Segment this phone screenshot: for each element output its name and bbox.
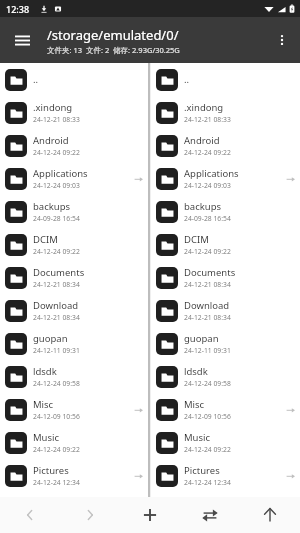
button[interactable]: DCIM bbox=[0, 228, 148, 261]
staticText: 文件夹: 13 文件: 2 储存: 2.93G/30.25G bbox=[47, 45, 180, 55]
button[interactable]: backups bbox=[151, 195, 300, 228]
staticText: 24-12-21 08:34 bbox=[33, 313, 80, 322]
button[interactable]: .xindong bbox=[0, 96, 148, 129]
staticText: DCIM bbox=[184, 233, 209, 246]
staticText: backups bbox=[33, 200, 71, 213]
staticText: 24-09-28 16:54 bbox=[184, 214, 231, 223]
staticText: 24-12-24 09:58 bbox=[184, 379, 231, 388]
button[interactable]: Misc bbox=[0, 393, 148, 426]
button[interactable]: Music bbox=[151, 426, 300, 459]
staticText: 24-12-21 08:34 bbox=[184, 313, 231, 322]
staticText: Android bbox=[33, 134, 69, 147]
staticText: guopan bbox=[184, 332, 219, 345]
button[interactable]: .. bbox=[0, 63, 148, 96]
staticText: DCIM bbox=[33, 233, 58, 246]
staticText: Music bbox=[33, 431, 60, 444]
staticText: Pictures bbox=[33, 464, 69, 477]
staticText: Applications bbox=[33, 167, 88, 180]
staticText: 24-12-09 10:56 bbox=[33, 412, 80, 421]
staticText: 24-12-24 09:22 bbox=[33, 445, 80, 454]
staticText: Documents bbox=[33, 266, 85, 279]
staticText: backups bbox=[184, 200, 222, 213]
staticText: 24-12-21 08:33 bbox=[33, 115, 80, 124]
staticText: 24-12-11 09:31 bbox=[184, 346, 231, 355]
staticText: 24-12-09 10:56 bbox=[184, 412, 231, 421]
button[interactable]: backups bbox=[0, 195, 148, 228]
button[interactable]: Misc bbox=[151, 393, 300, 426]
staticText: Android bbox=[184, 134, 220, 147]
staticText: 24-12-24 09:58 bbox=[33, 379, 80, 388]
button[interactable]: Download bbox=[151, 294, 300, 327]
button[interactable]: .xindong bbox=[151, 96, 300, 129]
staticText: Download bbox=[184, 299, 230, 312]
staticText: 24-12-24 09:03 bbox=[184, 181, 231, 190]
button[interactable]: Music bbox=[0, 426, 148, 459]
staticText: 24-12-24 09:22 bbox=[184, 445, 231, 454]
staticText: ldsdk bbox=[184, 365, 208, 378]
staticText: .. bbox=[33, 73, 39, 86]
button[interactable]: Applications bbox=[151, 162, 300, 195]
staticText: ldsdk bbox=[33, 365, 57, 378]
button[interactable]: guopan bbox=[151, 327, 300, 360]
staticText: 24-12-24 09:22 bbox=[184, 148, 231, 157]
staticText: 24-12-24 09:22 bbox=[184, 247, 231, 256]
staticText: Pictures bbox=[184, 464, 220, 477]
button[interactable]: Transfer bbox=[180, 497, 240, 533]
staticText: Misc bbox=[184, 398, 205, 411]
button[interactable]: ldsdk bbox=[0, 360, 148, 393]
staticText: Music bbox=[184, 431, 211, 444]
button[interactable]: Pictures bbox=[0, 459, 148, 492]
staticText: 24-12-24 09:22 bbox=[33, 247, 80, 256]
staticText: 12:38 bbox=[6, 3, 30, 15]
button[interactable]: Pictures bbox=[151, 459, 300, 492]
button[interactable]: .. bbox=[151, 63, 300, 96]
button[interactable]: Documents bbox=[151, 261, 300, 294]
button[interactable]: Forward bbox=[60, 497, 120, 533]
button[interactable]: Applications bbox=[0, 162, 148, 195]
staticText: Documents bbox=[184, 266, 236, 279]
button[interactable]: Back bbox=[0, 497, 60, 533]
staticText: 24-12-24 12:34 bbox=[184, 478, 231, 487]
button[interactable]: More options bbox=[267, 25, 297, 55]
staticText: 24-09-28 16:54 bbox=[33, 214, 80, 223]
staticText: 24-12-11 09:31 bbox=[33, 346, 80, 355]
staticText: .xindong bbox=[33, 101, 73, 114]
button[interactable]: ldsdk bbox=[151, 360, 300, 393]
button[interactable]: guopan bbox=[0, 327, 148, 360]
staticText: Download bbox=[33, 299, 79, 312]
staticText: /storage/emulated/0/ bbox=[47, 26, 179, 44]
staticText: 24-12-21 08:34 bbox=[33, 280, 80, 289]
staticText: 24-12-24 12:34 bbox=[33, 478, 80, 487]
staticText: 24-12-21 08:33 bbox=[184, 115, 231, 124]
staticText: .. bbox=[184, 73, 190, 86]
button[interactable]: Download bbox=[0, 294, 148, 327]
staticText: guopan bbox=[33, 332, 68, 345]
button[interactable]: Menu bbox=[6, 24, 38, 56]
button[interactable]: Documents bbox=[0, 261, 148, 294]
button[interactable]: Up bbox=[240, 497, 300, 533]
staticText: 24-12-24 09:03 bbox=[33, 181, 80, 190]
button[interactable]: Android bbox=[151, 129, 300, 162]
button[interactable]: DCIM bbox=[151, 228, 300, 261]
button[interactable]: Add bbox=[120, 497, 180, 533]
button[interactable]: Android bbox=[0, 129, 148, 162]
staticText: Misc bbox=[33, 398, 54, 411]
staticText: 24-12-24 09:22 bbox=[33, 148, 80, 157]
staticText: 24-12-21 08:34 bbox=[184, 280, 231, 289]
staticText: Applications bbox=[184, 167, 239, 180]
staticText: .xindong bbox=[184, 101, 224, 114]
